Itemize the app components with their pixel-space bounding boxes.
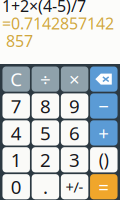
button[interactable]: 3 [61, 147, 88, 172]
staticText: 2 [40, 147, 51, 172]
staticText: − [98, 94, 109, 118]
button[interactable]: 4 [2, 120, 30, 145]
staticText: + [98, 120, 109, 145]
staticText: =0.7142857142 [2, 12, 114, 34]
button[interactable]: . [32, 174, 59, 199]
button[interactable]: 2 [32, 147, 59, 172]
button[interactable]: 6 [61, 120, 88, 145]
staticText: 857 [6, 30, 33, 52]
button[interactable]: 0 [2, 174, 30, 199]
staticText: × [69, 67, 80, 91]
button[interactable]: + [90, 120, 117, 145]
staticText: 9 [69, 94, 80, 118]
staticText: +/- [66, 177, 84, 196]
staticText: 1+2×(4-5)/7 [2, 0, 86, 17]
staticText: 5 [40, 120, 51, 145]
staticText: 4 [11, 120, 22, 145]
button[interactable]: 5 [32, 120, 59, 145]
staticText: = [98, 174, 109, 199]
staticText: 6 [69, 120, 80, 145]
staticText: 3 [69, 147, 80, 172]
button[interactable]: C [2, 66, 30, 92]
staticText: 7 [11, 94, 22, 118]
button[interactable]: = [90, 174, 117, 199]
button[interactable]: 8 [32, 93, 59, 119]
button[interactable]: 9 [61, 93, 88, 119]
button[interactable]: () [90, 147, 117, 172]
staticText: () [99, 148, 109, 171]
staticText: ÷ [40, 67, 51, 91]
button[interactable]: ÷ [32, 66, 59, 92]
button[interactable]: +/- [61, 174, 88, 199]
button[interactable]: 1 [2, 147, 30, 172]
staticText: C [10, 67, 22, 91]
button[interactable]: 7 [2, 93, 30, 119]
button[interactable]: − [90, 93, 117, 119]
button[interactable]: Delete [90, 66, 117, 92]
staticText: 0 [11, 174, 22, 199]
staticText: 1 [11, 147, 22, 172]
staticText: . [43, 174, 48, 199]
staticText: 8 [40, 94, 51, 118]
button[interactable]: × [61, 66, 88, 92]
